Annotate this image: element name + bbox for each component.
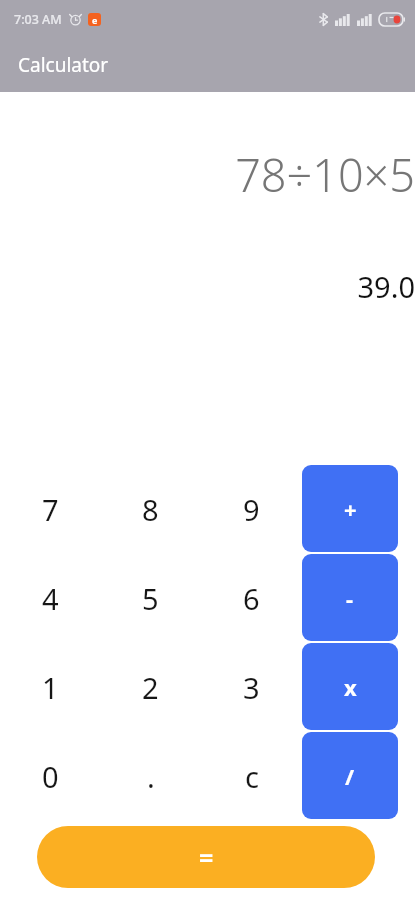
- staticText: 1: [42, 668, 59, 707]
- button[interactable]: c: [201, 732, 302, 821]
- button[interactable]: 2: [100, 643, 201, 732]
- staticText: .: [147, 757, 155, 796]
- button[interactable]: -: [302, 554, 398, 641]
- staticText: 78÷10×5: [0, 144, 415, 205]
- other: Bluetooth: [319, 13, 328, 26]
- other: Battery: [379, 13, 405, 26]
- button[interactable]: 3: [201, 643, 302, 732]
- staticText: =: [199, 840, 214, 874]
- staticText: 39.0: [0, 267, 415, 306]
- button[interactable]: 0: [0, 732, 100, 821]
- staticText: e: [92, 14, 98, 26]
- other: Signal strength: [357, 14, 372, 26]
- button[interactable]: 9: [201, 465, 302, 554]
- button[interactable]: .: [100, 732, 201, 821]
- button[interactable]: 8: [100, 465, 201, 554]
- staticText: 8: [142, 490, 159, 529]
- other: Signal strength: [335, 14, 350, 26]
- staticText: 9: [243, 490, 260, 529]
- staticText: 7: [42, 490, 59, 529]
- button[interactable]: +: [302, 465, 398, 552]
- button[interactable]: 4: [0, 554, 100, 643]
- staticText: 6: [243, 579, 260, 618]
- button[interactable]: 5: [100, 554, 201, 643]
- staticText: x: [344, 672, 357, 702]
- button[interactable]: /: [302, 732, 398, 819]
- staticText: +: [344, 494, 357, 524]
- staticText: 5: [142, 579, 159, 618]
- staticText: 0: [42, 757, 59, 796]
- button[interactable]: 7: [0, 465, 100, 554]
- button[interactable]: 6: [201, 554, 302, 643]
- other: Alarm: [69, 13, 82, 26]
- staticText: 3: [243, 668, 260, 707]
- button[interactable]: =: [37, 826, 375, 888]
- staticText: 7:03 AM: [14, 11, 62, 28]
- staticText: Calculator: [18, 52, 109, 78]
- staticText: c: [245, 757, 259, 796]
- staticText: -: [346, 583, 354, 613]
- staticText: /: [345, 761, 355, 791]
- staticText: 2: [142, 668, 159, 707]
- staticText: 4: [42, 579, 59, 618]
- button[interactable]: x: [302, 643, 398, 730]
- button[interactable]: 1: [0, 643, 100, 732]
